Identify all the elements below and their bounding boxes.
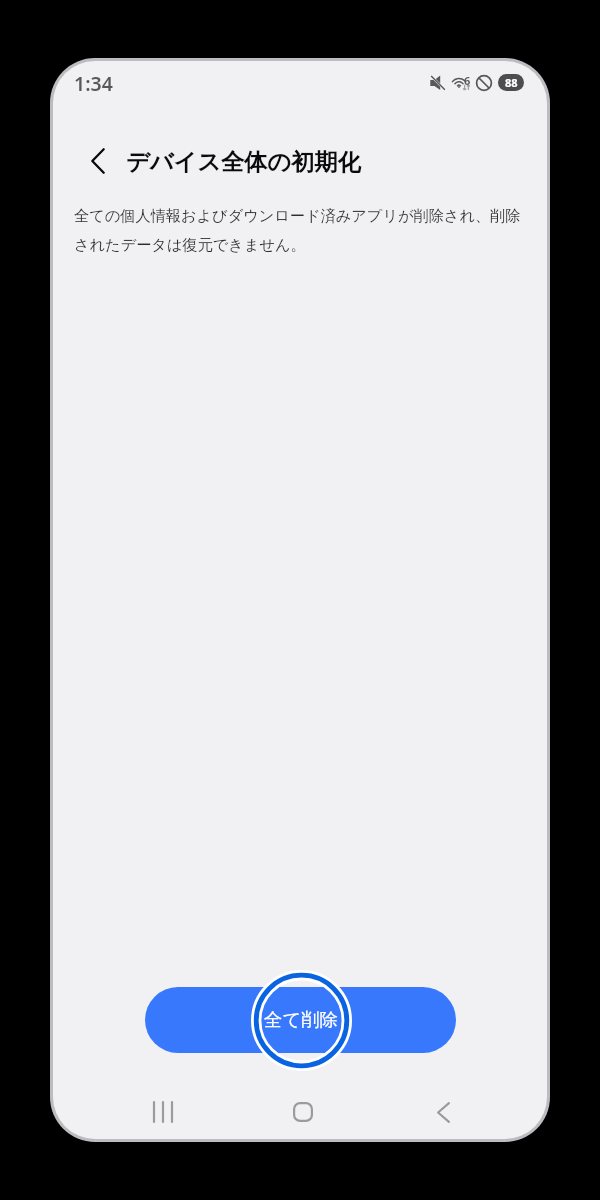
staticText: 88 (505, 75, 518, 90)
staticText: 全ての個人情報およびダウンロード済みアプリが削除され、削除されたデータは復元でき… (74, 206, 526, 255)
staticText: 1:34 (74, 70, 113, 97)
staticText: 全て削除 (264, 1008, 338, 1031)
button[interactable]: Back (75, 138, 121, 184)
button[interactable]: Recent apps (133, 1082, 193, 1139)
staticText: デバイス全体の初期化 (126, 148, 361, 177)
button[interactable]: Home (273, 1082, 333, 1139)
button[interactable]: Back (413, 1082, 473, 1139)
button[interactable]: 全て削除 (145, 987, 456, 1053)
staticText: 6 (464, 73, 471, 88)
